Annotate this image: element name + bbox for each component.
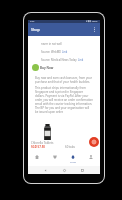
button[interactable]: Buy Now: [32, 64, 54, 71]
staticText: Link: [62, 50, 68, 54]
button[interactable]: Shop: [64, 152, 82, 166]
staticText: Buy Now: [40, 66, 54, 70]
staticText: Link: [78, 58, 84, 62]
button[interactable]: Profile: [82, 152, 100, 166]
staticText: ▾ ▮ ▮ 100%: [86, 20, 98, 23]
staticText: Source: WebMD: [41, 50, 62, 54]
staticText: This product ships internationally from …: [35, 86, 93, 114]
staticText: 4:01: [30, 20, 35, 23]
staticText: Buy now and earn cash bonuses, from your…: [35, 76, 93, 84]
button[interactable]: More options: [90, 25, 99, 34]
staticText: Chlorella Tablets: [31, 141, 54, 145]
button[interactable]: Add to cart: [89, 137, 99, 147]
staticText: Shop: [31, 27, 40, 32]
staticText: Shop: [70, 160, 76, 163]
button[interactable]: Home: [28, 152, 46, 166]
staticText: SGD 57.50: [31, 145, 45, 149]
staticText: Source: Medical News Today: [41, 58, 78, 62]
button[interactable]: Favourites: [46, 152, 64, 166]
staticText: 60 tabs: [65, 145, 75, 149]
staticText: never in not well: [41, 42, 62, 46]
